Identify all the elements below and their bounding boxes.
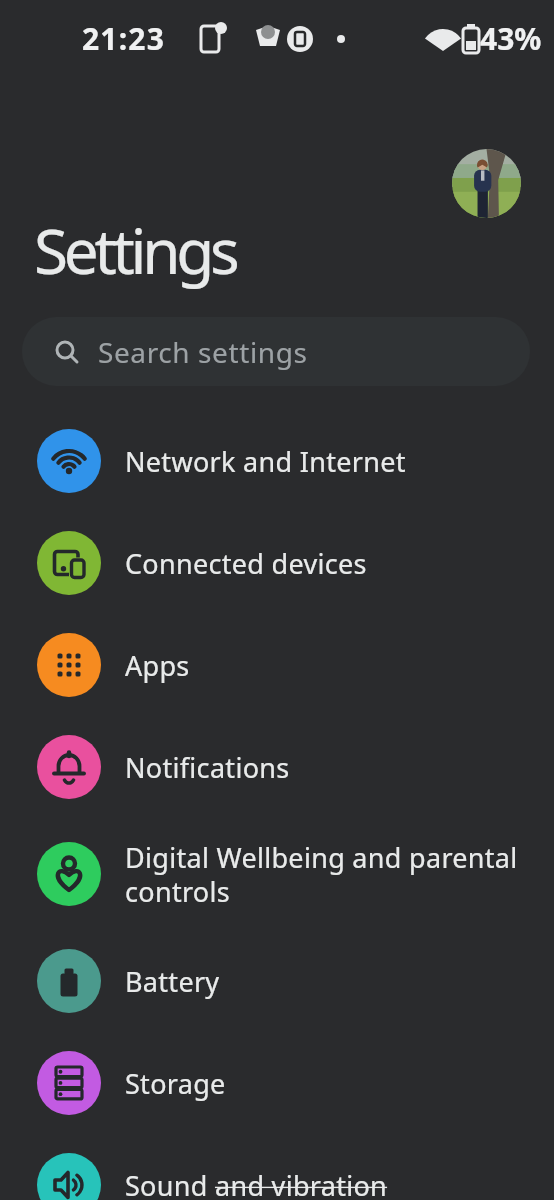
staticText: Notifications [125,749,290,786]
button[interactable]: Search settings [22,317,530,386]
button[interactable]: Digital Wellbeing and parental controls [0,818,554,930]
staticText: Apps [125,647,190,684]
button[interactable]: Sound and vibration [0,1134,554,1200]
staticText: 43% [480,18,542,59]
staticText: Network and Internet [125,443,406,480]
staticText: Sound and vibration [125,1167,388,1200]
button[interactable]: Connected devices [0,512,554,614]
button[interactable] [452,149,521,218]
staticText: Digital Wellbeing and parental controls [125,839,518,910]
button[interactable]: Battery [0,930,554,1032]
button[interactable]: Storage [0,1032,554,1134]
staticText: Storage [125,1065,226,1102]
button[interactable]: Network and Internet [0,410,554,512]
staticText: Connected devices [125,545,367,582]
staticText: Settings [34,208,236,292]
staticText: 21:23 [82,18,166,59]
button[interactable]: Notifications [0,716,554,818]
staticText: Battery [125,963,220,1000]
staticText: Search settings [98,333,308,371]
button[interactable]: Apps [0,614,554,716]
